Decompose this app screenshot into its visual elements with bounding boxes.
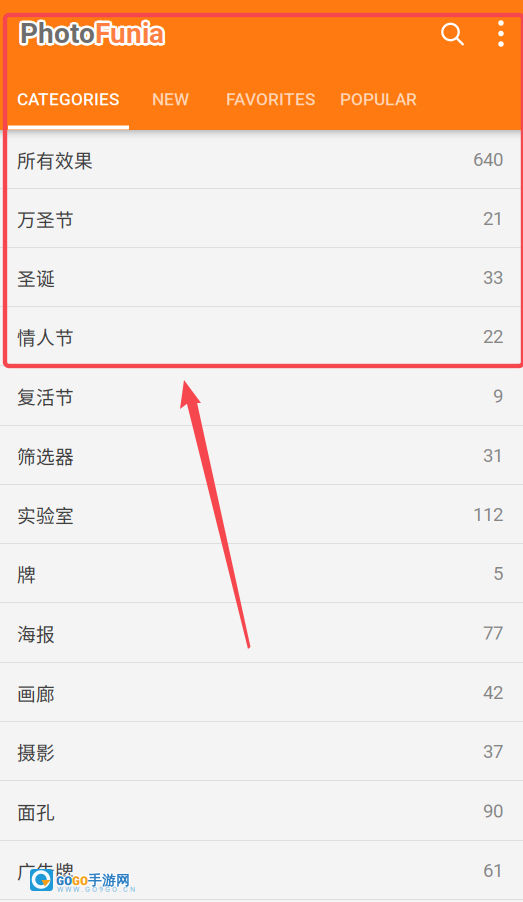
staticText: 手游网: [88, 873, 130, 890]
staticText: 画廊: [17, 679, 55, 706]
staticText: GO: [73, 872, 89, 888]
staticText: 筛选器: [17, 442, 74, 469]
staticText: FAVORITES: [226, 89, 315, 109]
staticText: W W W . G O 9 G O . C N: [57, 885, 135, 893]
staticText: Funia: [95, 14, 164, 47]
button[interactable]: 所有效果: [0, 130, 523, 189]
button[interactable]: 摄影: [0, 722, 523, 781]
staticText: GO: [57, 872, 73, 888]
staticText: Photo: [18, 15, 93, 48]
staticText: GO: [56, 871, 72, 887]
staticText: Funia: [92, 17, 161, 50]
staticText: 面孔: [17, 797, 55, 824]
button[interactable]: Search: [424, 2, 480, 64]
staticText: Photo: [20, 14, 95, 47]
button[interactable]: CATEGORIES: [0, 66, 135, 129]
staticText: NEW: [152, 89, 189, 109]
staticText: 31: [483, 445, 503, 466]
staticText: Photo: [22, 15, 97, 48]
staticText: 21: [483, 208, 503, 229]
staticText: 9: [493, 385, 503, 407]
staticText: 手游网: [87, 872, 129, 889]
button[interactable]: 海报: [0, 603, 523, 663]
staticText: 情人节: [17, 323, 74, 350]
button[interactable]: 广告牌: [0, 841, 523, 900]
staticText: 手游网: [89, 873, 131, 890]
staticText: GO: [55, 873, 71, 889]
staticText: Funia: [98, 17, 167, 50]
staticText: GO: [56, 874, 72, 890]
staticText: GO: [55, 872, 71, 888]
staticText: GO: [57, 873, 73, 889]
staticText: 37: [483, 741, 503, 762]
staticText: 手游网: [88, 872, 130, 889]
staticText: GO: [71, 873, 87, 888]
staticText: Photo: [17, 17, 92, 50]
staticText: 33: [483, 267, 503, 288]
staticText: GO: [71, 872, 87, 888]
staticText: 手游网: [89, 871, 131, 888]
staticText: 海报: [17, 619, 55, 646]
staticText: 复活节: [17, 382, 74, 409]
staticText: 所有效果: [17, 146, 93, 173]
staticText: 22: [483, 326, 503, 347]
button[interactable]: 圣诞: [0, 248, 523, 307]
staticText: 手游网: [88, 871, 130, 888]
staticText: GO: [57, 873, 73, 888]
staticText: 手游网: [87, 871, 129, 888]
staticText: Funia: [93, 15, 162, 48]
staticText: 5: [493, 563, 503, 584]
staticText: GO: [72, 871, 88, 887]
button[interactable]: 面孔: [0, 781, 523, 841]
staticText: Photo: [23, 17, 98, 50]
staticText: Funia: [95, 17, 164, 50]
staticText: 77: [483, 622, 503, 644]
staticText: GO: [56, 873, 72, 888]
button[interactable]: 牌: [0, 544, 523, 603]
staticText: GO: [72, 873, 88, 888]
staticText: 广告牌: [17, 857, 74, 884]
staticText: Photo: [20, 17, 95, 50]
button[interactable]: 筛选器: [0, 426, 523, 485]
staticText: 手游网: [87, 873, 129, 890]
staticText: Funia: [97, 15, 166, 48]
staticText: Funia: [93, 19, 162, 52]
staticText: Photo: [18, 19, 93, 52]
staticText: CATEGORIES: [17, 89, 119, 109]
staticText: 112: [473, 504, 503, 525]
staticText: 90: [483, 800, 503, 822]
button[interactable]: POPULAR: [327, 66, 434, 129]
button[interactable]: FAVORITES: [208, 66, 327, 129]
staticText: 640: [473, 149, 503, 170]
staticText: 42: [483, 682, 503, 703]
button[interactable]: 复活节: [0, 366, 523, 426]
staticText: GO: [71, 873, 87, 889]
staticText: Funia: [95, 20, 164, 52]
staticText: 万圣节: [17, 205, 74, 232]
staticText: Photo: [22, 19, 97, 52]
staticText: 圣诞: [17, 264, 55, 291]
button[interactable]: 万圣节: [0, 189, 523, 248]
staticText: GO: [73, 873, 89, 888]
staticText: 61: [483, 860, 503, 881]
staticText: POPULAR: [340, 89, 417, 109]
staticText: 牌: [17, 560, 36, 587]
button[interactable]: 情人节: [0, 307, 523, 366]
button[interactable]: NEW: [135, 66, 208, 129]
staticText: Funia: [97, 19, 166, 52]
button[interactable]: 画廊: [0, 663, 523, 722]
button[interactable]: 实验室: [0, 485, 523, 544]
staticText: GO: [72, 874, 88, 890]
staticText: 实验室: [17, 501, 74, 528]
staticText: GO: [73, 873, 89, 889]
staticText: 手游网: [89, 872, 131, 889]
button[interactable]: More options: [480, 2, 522, 64]
staticText: Photo: [20, 20, 95, 52]
staticText: GO: [55, 873, 71, 888]
staticText: 摄影: [17, 738, 55, 765]
